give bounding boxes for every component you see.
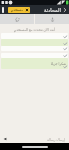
button[interactable] (1, 33, 68, 39)
button[interactable] (1, 53, 68, 58)
button[interactable]: Voice message (35, 14, 69, 24)
button[interactable]: Back (2, 136, 8, 142)
button[interactable]: Back (62, 7, 67, 12)
button[interactable] (1, 39, 68, 46)
button[interactable]: مستخدم جديد (8, 7, 30, 13)
button[interactable]: Profile (2, 7, 4, 13)
button[interactable]: Home (22, 146, 48, 148)
button[interactable] (1, 46, 68, 51)
staticText: شكرا جزيلا (3, 61, 66, 66)
staticText: أنت الآن تتحدث مع المستخدم (3, 27, 66, 32)
staticText: المحادثة (44, 7, 61, 13)
staticText: مستخدم جديد (9, 7, 25, 13)
button[interactable]: شكرا جزيلا (1, 58, 68, 69)
staticText: إرسال رسالة (47, 137, 66, 142)
button[interactable]: Call (0, 14, 34, 24)
